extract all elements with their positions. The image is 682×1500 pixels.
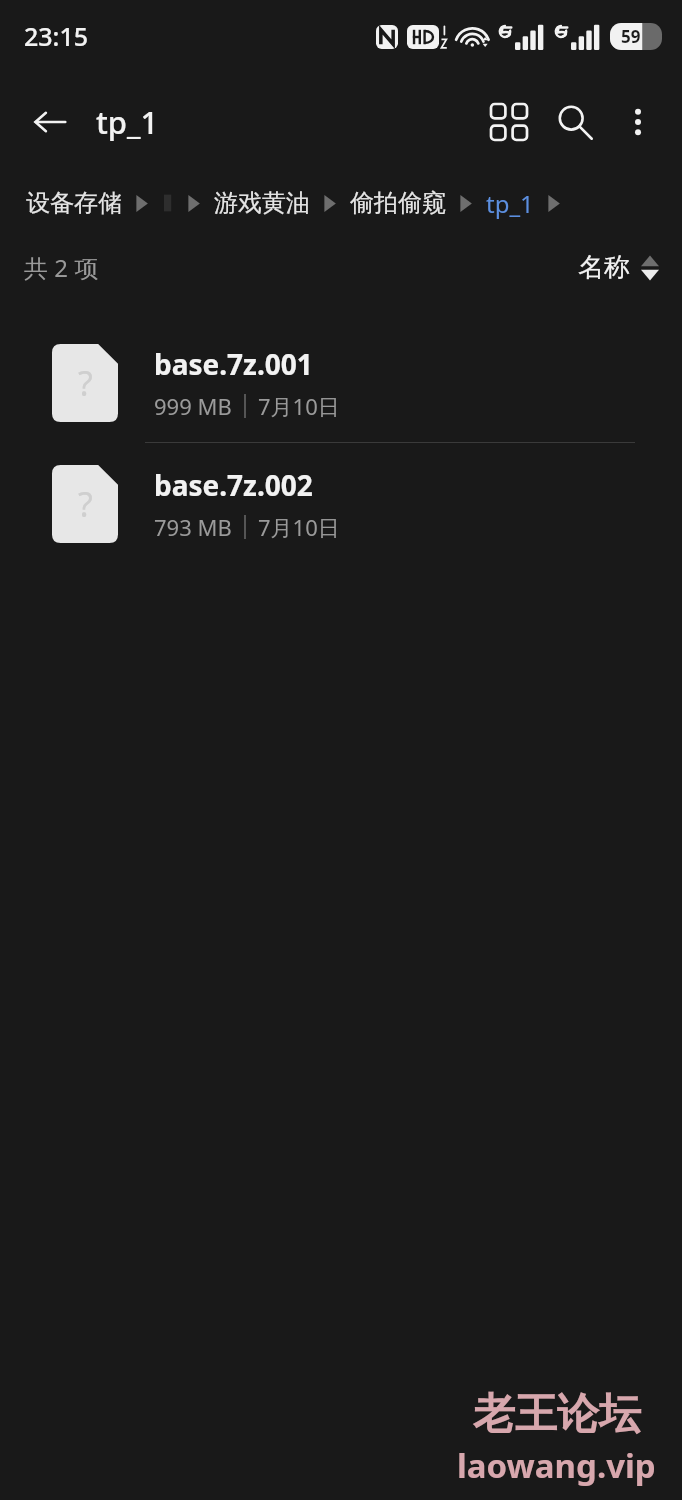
staticText: ? [78,360,93,406]
button[interactable]: 名称 [574,247,664,288]
button[interactable]: Back [18,90,82,154]
button[interactable]: tp_1 [484,185,536,222]
button[interactable]: Hidden path segment [160,192,176,214]
staticText: 7月10日 [258,512,340,542]
staticText: tp_1 [486,187,534,220]
staticText: 老王论坛 [473,1388,641,1441]
staticText: 7月10日 [258,391,340,421]
staticText: base.7z.001 [154,345,313,383]
button[interactable]: ? [0,443,682,564]
button[interactable]: Grid view [476,89,542,155]
button[interactable]: 偷拍偷窥 [348,186,448,220]
button[interactable]: ? [0,322,682,443]
button[interactable]: More options [608,92,668,152]
staticText: ? [78,481,93,527]
staticText: 共 2 项 [24,251,99,284]
staticText: 999 MB [154,391,232,421]
staticText: 偷拍偷窥 [350,188,446,218]
staticText: 设备存储 [26,188,122,218]
staticText: 名称 [578,251,630,284]
button[interactable]: 游戏黄油 [212,186,312,220]
staticText: 23:15 [24,19,89,53]
staticText: 793 MB [154,512,232,542]
staticText: 游戏黄油 [214,188,310,218]
staticText: 59 [621,25,641,48]
staticText: base.7z.002 [154,466,313,504]
button[interactable]: Search [542,89,608,155]
staticText: tp_1 [96,101,159,143]
button[interactable]: 设备存储 [24,186,124,220]
staticText: laowang.vip [457,1443,656,1488]
